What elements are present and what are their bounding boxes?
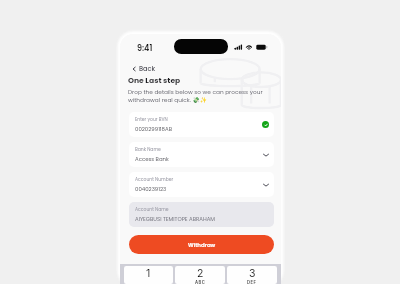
staticText: Back [139, 64, 156, 73]
staticText: Account Number [135, 176, 174, 182]
staticText: 0020299118AB [135, 125, 172, 133]
staticText: 3 [249, 267, 256, 280]
staticText: 2 [197, 267, 204, 280]
staticText: 9:41 [137, 43, 153, 54]
staticText: Drop the details below so we can process… [128, 88, 267, 104]
other: Expand [263, 183, 269, 187]
button[interactable]: 1 [124, 266, 173, 284]
button[interactable]: Account Number [129, 172, 274, 197]
staticText: Bank Name [135, 146, 161, 152]
staticText: DEF [247, 280, 257, 284]
button[interactable]: Enter your BVN [129, 112, 274, 137]
staticText: 0040239123 [135, 185, 167, 193]
staticText: 1 [146, 267, 151, 280]
button[interactable]: Account Name [129, 202, 274, 227]
staticText: AIYEGBUSI TEMITOPE ABRAHAM [135, 215, 215, 223]
other: BVN verified [262, 121, 269, 128]
staticText: ABC [195, 280, 206, 284]
button[interactable]: Bank Name [129, 142, 274, 167]
other: Expand [263, 153, 269, 157]
staticText: Enter your BVN [135, 116, 168, 122]
button[interactable]: Back [131, 62, 157, 75]
staticText: Account Name [135, 206, 169, 212]
staticText: Withdraw [188, 241, 216, 249]
button[interactable]: 2 [175, 266, 225, 284]
button[interactable]: Withdraw [129, 235, 274, 254]
button[interactable]: 3 [227, 266, 277, 284]
staticText: One Last step [128, 75, 181, 86]
staticText: Access Bank [135, 155, 169, 163]
